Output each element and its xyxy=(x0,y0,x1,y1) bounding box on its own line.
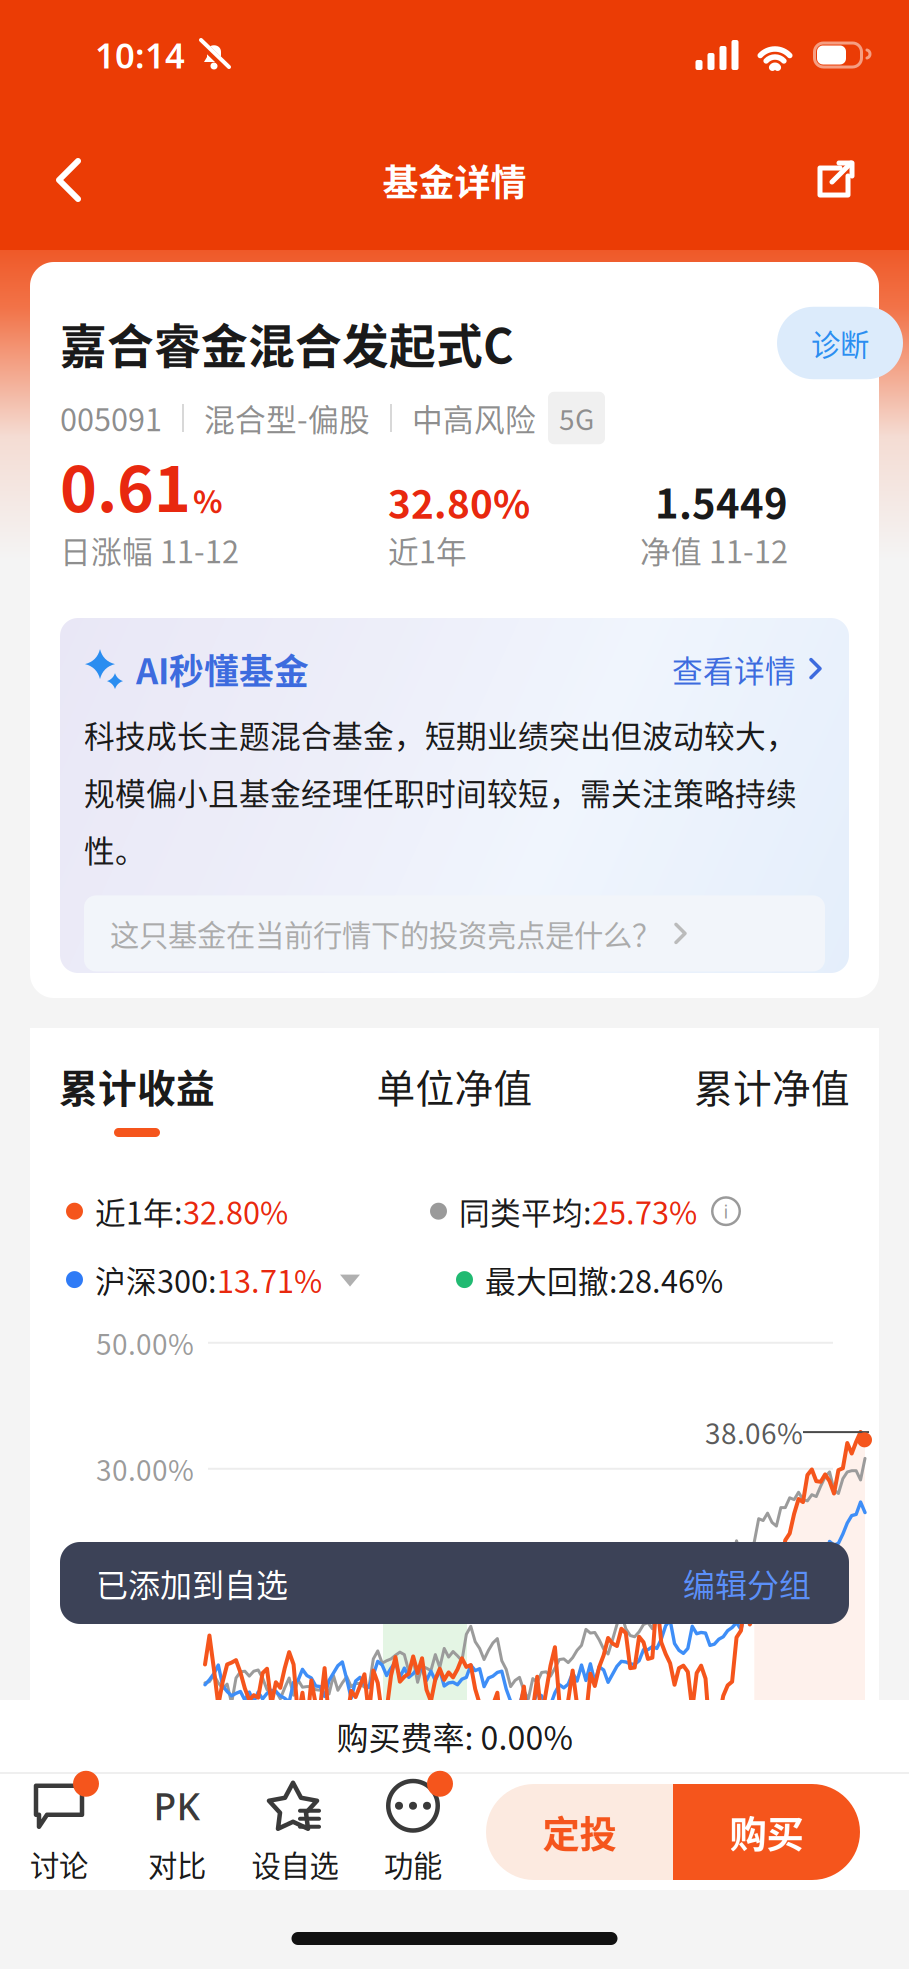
staticText: 10:14 xyxy=(95,32,185,78)
staticText: 005091 xyxy=(60,396,162,440)
staticText: 购买费率: 0.00% xyxy=(336,1713,572,1759)
staticText: PK xyxy=(153,1781,200,1831)
staticText: 日涨幅 11-12 xyxy=(60,528,239,572)
staticText: i xyxy=(723,1199,728,1224)
button[interactable]: 查看详情 xyxy=(672,647,823,691)
staticText: 38.06% xyxy=(705,1412,803,1452)
button[interactable]: 诊断 xyxy=(777,307,903,379)
button[interactable]: 编辑分组 xyxy=(683,1560,811,1606)
staticText: 1.5449 xyxy=(655,472,788,530)
staticText: 混合型-偏股 xyxy=(204,396,370,440)
staticText: % xyxy=(193,478,223,522)
staticText: 近1年: xyxy=(95,1189,183,1233)
button[interactable]: 设自选 xyxy=(236,1779,354,1885)
button[interactable]: 这只基金在当前行情下的投资亮点是什么？ xyxy=(84,895,825,971)
button[interactable]: 讨论 xyxy=(0,1779,118,1885)
button[interactable]: PK xyxy=(118,1779,236,1885)
staticText: 购买 xyxy=(729,1805,803,1859)
staticText: 定投 xyxy=(542,1805,616,1859)
staticText: 累计收益 xyxy=(59,1058,215,1114)
staticText: 诊断 xyxy=(811,322,869,364)
staticText: 0.61 xyxy=(60,439,191,530)
staticText: 功能 xyxy=(384,1843,442,1885)
staticText: 已添加到自选 xyxy=(96,1560,288,1606)
button[interactable]: 累计净值 xyxy=(679,1058,865,1114)
button[interactable]: 定投 xyxy=(486,1784,673,1880)
staticText: 编辑分组 xyxy=(683,1560,811,1606)
staticText: 累计净值 xyxy=(694,1058,850,1114)
staticText: 32.80% xyxy=(388,474,530,530)
staticText: 最大回撤: xyxy=(485,1257,618,1302)
button[interactable]: Share xyxy=(791,137,877,223)
staticText: 30.00% xyxy=(96,1448,194,1489)
button[interactable]: 购买 xyxy=(673,1784,860,1880)
staticText: 25.73% xyxy=(592,1189,697,1233)
staticText: 50.00% xyxy=(96,1322,194,1363)
staticText: 查看详情 xyxy=(672,647,796,691)
staticText: 基金详情 xyxy=(382,154,526,206)
staticText: 13.71% xyxy=(217,1257,322,1302)
staticText: 这只基金在当前行情下的投资亮点是什么？ xyxy=(110,912,661,955)
staticText: 单位净值 xyxy=(376,1058,532,1114)
button[interactable]: 单位净值 xyxy=(361,1058,547,1114)
staticText: 嘉合睿金混合发起式C xyxy=(60,309,514,377)
button[interactable]: Back xyxy=(28,135,108,225)
staticText: 沪深300: xyxy=(95,1257,217,1302)
staticText: 同类平均: xyxy=(459,1189,592,1233)
staticText: 科技成长主题混合基金，短期业绩突出但波动较大，规模偏小且基金经理任职时间较短，需… xyxy=(84,712,797,871)
staticText: 设自选 xyxy=(251,1843,338,1885)
staticText: 对比 xyxy=(148,1843,206,1885)
staticText: 5G xyxy=(559,398,594,438)
staticText: 32.80% xyxy=(183,1189,288,1233)
staticText: 28.46% xyxy=(618,1257,723,1302)
staticText: 讨论 xyxy=(30,1843,88,1885)
staticText: 中高风险 xyxy=(412,396,536,440)
staticText: 近1年 xyxy=(388,528,467,572)
staticText: 净值 11-12 xyxy=(640,528,788,572)
staticText: AI秒懂基金 xyxy=(136,644,309,694)
button[interactable]: 累计收益 xyxy=(44,1058,230,1137)
button[interactable]: 功能 xyxy=(354,1779,472,1885)
